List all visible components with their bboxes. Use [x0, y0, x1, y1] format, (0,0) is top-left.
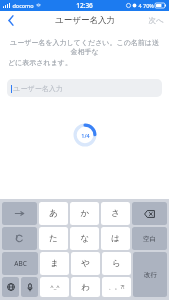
staticText: 1/4: [81, 132, 90, 139]
staticText: 4: [138, 2, 142, 9]
staticText: どに表示されます。: [8, 58, 72, 67]
button[interactable]: は: [101, 227, 130, 250]
staticText: ^_^: [50, 283, 60, 291]
staticText: ユーザー名入力: [55, 15, 115, 26]
button[interactable]: た: [39, 227, 68, 250]
button[interactable]: ユーザー名入力: [7, 79, 162, 97]
button[interactable]: ABC: [2, 252, 38, 275]
button[interactable]: わ: [71, 277, 100, 297]
staticText: あ: [49, 208, 58, 219]
button[interactable]: Delete: [132, 202, 167, 225]
button[interactable]: 空白: [132, 227, 167, 250]
button[interactable]: ら: [102, 252, 131, 275]
staticText: ユーザー名を入力してください。この名前は送金相手な: [8, 38, 161, 56]
button[interactable]: Undo: [2, 227, 37, 250]
staticText: 、。?!: [108, 283, 125, 291]
button[interactable]: ま: [40, 252, 69, 275]
button[interactable]: ^_^: [40, 277, 69, 297]
button[interactable]: さ: [101, 202, 130, 225]
staticText: や: [81, 258, 90, 269]
button[interactable]: な: [70, 227, 99, 250]
button[interactable]: Voice input: [21, 277, 38, 297]
button[interactable]: 改行: [133, 252, 167, 297]
staticText: ら: [112, 258, 121, 269]
button[interactable]: Move cursor right: [2, 202, 37, 225]
button[interactable]: や: [71, 252, 100, 275]
staticText: は: [111, 233, 120, 244]
button[interactable]: 次へ: [148, 16, 164, 25]
button[interactable]: Switch keyboard: [2, 277, 19, 297]
staticText: た: [49, 233, 58, 244]
button[interactable]: Back: [0, 11, 22, 29]
staticText: さ: [111, 208, 120, 219]
button[interactable]: 、。?!: [102, 277, 131, 297]
staticText: docomo: [12, 2, 34, 9]
button[interactable]: か: [70, 202, 99, 225]
staticText: ま: [50, 258, 59, 269]
staticText: わ: [81, 282, 90, 293]
staticText: ユーザー名入力: [13, 84, 63, 93]
staticText: 次へ: [148, 16, 164, 25]
button[interactable]: あ: [39, 202, 68, 225]
staticText: 12:36: [76, 1, 93, 10]
staticText: 空白: [143, 235, 156, 243]
staticText: 70%: [143, 2, 154, 9]
staticText: か: [80, 208, 89, 219]
staticText: 改行: [144, 271, 157, 279]
staticText: ABC: [14, 259, 27, 268]
staticText: な: [80, 233, 89, 244]
